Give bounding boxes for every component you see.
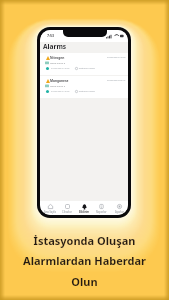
staticText: Bildirim [79, 210, 90, 214]
staticText: 24.09.2024 10:40 [107, 56, 126, 59]
staticText: 23.09.2024 08:12 [107, 79, 126, 82]
button[interactable]: Manganese [40, 76, 128, 98]
staticText: 24.09.2024 10:40 [51, 67, 70, 70]
staticText: Cihazlar [62, 210, 72, 214]
staticText: İstasyonda Oluşan Alarmlardan Haberdar O… [23, 233, 146, 290]
staticText: 7:53 [47, 33, 55, 38]
staticText: Alarms [43, 42, 67, 51]
button[interactable]: Nitrogen [40, 53, 128, 75]
staticText: Temiz sayısı 3 [50, 84, 66, 87]
staticText: Manganese [50, 79, 69, 83]
button[interactable]: Ayarlar [111, 201, 128, 215]
staticText: Temiz sayısı 6 [50, 61, 66, 64]
staticText: 24.09.2024 10:40 [51, 90, 70, 93]
button[interactable]: Ana Sayfa [41, 201, 58, 215]
staticText: Ana Sayfa [44, 210, 56, 214]
staticText: Nitrogen [50, 56, 65, 60]
staticText: Bağlantı hatası [79, 90, 96, 93]
button[interactable]: Bildirim [76, 201, 93, 215]
staticText: Raporlar [96, 210, 107, 214]
button[interactable]: Cihazlar [58, 201, 75, 215]
staticText: Ayarlar [115, 210, 124, 214]
staticText: Bağlantı hatası [79, 67, 96, 70]
button[interactable]: Raporlar [93, 201, 110, 215]
